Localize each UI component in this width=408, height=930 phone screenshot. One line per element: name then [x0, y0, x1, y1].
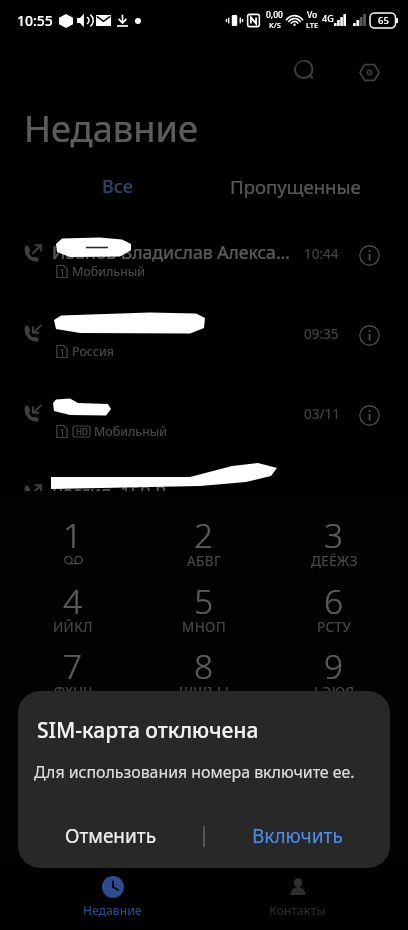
button[interactable]: Call details — [359, 325, 380, 346]
staticText: Мобильный — [94, 423, 168, 440]
button[interactable]: Search — [294, 60, 316, 82]
button[interactable]: Включить — [205, 814, 390, 858]
staticText: 5 — [194, 578, 214, 624]
staticText: 6 — [324, 578, 344, 624]
button[interactable]: Россия, 159 Р... — [0, 458, 408, 538]
button[interactable]: Отменить — [18, 814, 203, 858]
staticText: Все — [102, 174, 133, 199]
staticText: 1 — [60, 427, 65, 438]
staticText: Недавние — [83, 902, 142, 918]
staticText: 4G — [322, 12, 334, 24]
staticText: LTE — [306, 20, 319, 30]
button[interactable]: 6 — [269, 574, 399, 640]
staticText: 03/11 — [304, 405, 340, 423]
staticText: HD — [76, 426, 88, 437]
button[interactable]: 1 — [8, 508, 138, 574]
staticText: Россия — [72, 343, 115, 360]
staticText: Отменить — [65, 823, 157, 849]
button[interactable]: * — [8, 705, 138, 771]
staticText: Россия, 159 Р... — [52, 480, 304, 504]
button[interactable]: Недавние — [22, 868, 203, 930]
staticText: 2 — [194, 512, 214, 558]
button[interactable]: 0 — [139, 705, 269, 771]
button[interactable]: 4 — [8, 574, 138, 640]
staticText: Vo — [307, 9, 318, 21]
staticText: 1 — [63, 512, 83, 558]
button[interactable]: Call details — [359, 405, 380, 426]
button[interactable]: 8 — [139, 639, 269, 705]
button[interactable]: Settings — [359, 62, 380, 83]
button[interactable]: 3 — [269, 508, 399, 574]
button[interactable]: Все — [32, 166, 202, 206]
staticText: Недавние — [24, 103, 199, 152]
staticText: 9 — [324, 643, 344, 689]
staticText: Включить — [252, 823, 343, 849]
staticText: 65 — [378, 14, 389, 27]
staticText: 3 — [324, 512, 344, 558]
button[interactable]: Иванов Владислав Алекса… — [0, 218, 408, 298]
button[interactable]: 2 — [139, 508, 269, 574]
staticText: Мобильный — [72, 263, 146, 280]
button[interactable]: 7 — [8, 639, 138, 705]
staticText: Иванов Владислав Алекса… — [52, 240, 304, 264]
staticText — [52, 400, 304, 424]
staticText: ШЩЪЫ — [179, 683, 230, 701]
staticText: 7 — [63, 643, 83, 689]
button[interactable]: Call details — [359, 245, 380, 266]
staticText: ЬЭЮЯ — [314, 683, 355, 701]
staticText: 1 — [60, 267, 65, 278]
staticText: 0,00 — [266, 9, 283, 21]
staticText: 1 — [60, 347, 65, 358]
button[interactable]: 5 — [139, 574, 269, 640]
staticText: Контакты — [269, 902, 326, 918]
staticText: 10:44 — [304, 245, 339, 263]
staticText: Для использования номера включите ее. — [34, 761, 355, 783]
staticText: 09:35 — [304, 325, 339, 343]
staticText: 8 — [194, 643, 214, 689]
staticText: 4 — [63, 578, 83, 624]
staticText: SIM-карта отключена — [37, 716, 259, 745]
staticText: МНОП — [182, 618, 227, 636]
staticText: K/S — [269, 20, 281, 30]
button[interactable]: 1 — [0, 298, 408, 378]
staticText: ДЕЁЖЗ — [311, 552, 358, 570]
staticText: 0 — [194, 709, 214, 755]
staticText: РСТУ — [317, 618, 352, 636]
button[interactable]: Контакты — [207, 868, 388, 930]
button[interactable]: 1 — [0, 378, 408, 458]
staticText: * — [64, 709, 83, 755]
staticText: Пропущенные — [230, 174, 361, 199]
button[interactable]: # — [269, 705, 399, 771]
staticText: АБВГ — [187, 552, 222, 570]
button[interactable]: 9 — [269, 639, 399, 705]
staticText: 10:55 — [17, 11, 53, 30]
staticText: ИЙКЛ — [53, 618, 93, 636]
staticText: ФХЦЧ — [54, 683, 93, 701]
staticText — [52, 320, 304, 344]
button[interactable]: Пропущенные — [210, 166, 380, 206]
